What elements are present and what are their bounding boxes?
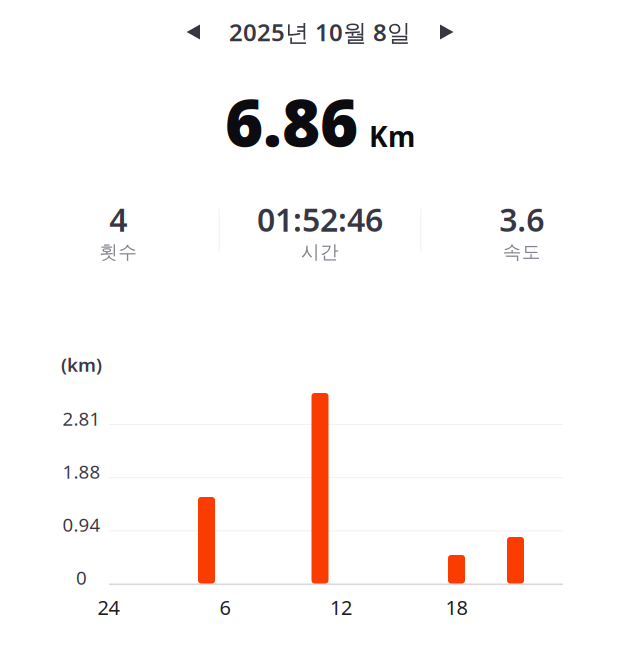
- staticText: 6: [219, 594, 230, 621]
- staticText: 0.94: [62, 512, 100, 537]
- staticText: Km: [369, 118, 415, 155]
- staticText: 18: [445, 594, 467, 621]
- staticText: 시간: [301, 240, 339, 263]
- staticText: 횟수: [99, 240, 137, 263]
- staticText: 2025년 10월 8일: [229, 16, 411, 48]
- staticText: (km): [61, 352, 102, 377]
- staticText: 4: [109, 198, 127, 240]
- staticText: 속도: [503, 240, 541, 263]
- button[interactable]: Next day: [429, 14, 465, 50]
- staticText: 24: [97, 594, 119, 621]
- staticText: 6.86: [225, 78, 358, 165]
- button[interactable]: Previous day: [175, 14, 211, 50]
- staticText: 2.81: [62, 406, 100, 431]
- staticText: 3.6: [499, 198, 544, 240]
- staticText: 1.88: [62, 459, 100, 484]
- staticText: 12: [330, 594, 352, 621]
- staticText: 0: [76, 565, 87, 590]
- staticText: 01:52:46: [257, 198, 383, 240]
